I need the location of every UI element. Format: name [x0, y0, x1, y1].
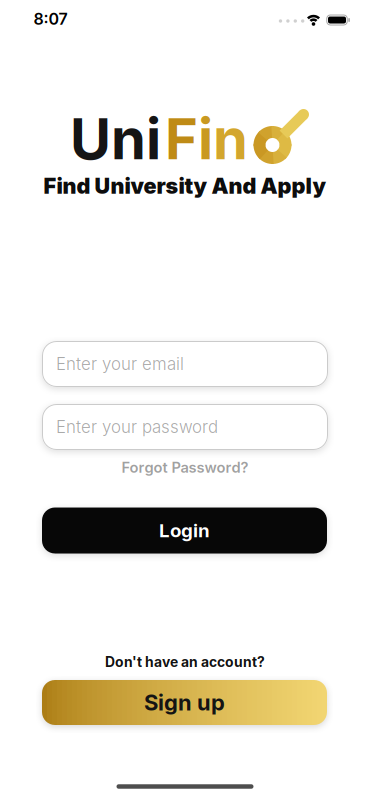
button[interactable]: Enter your password [42, 404, 328, 450]
staticText: Uni [70, 105, 161, 173]
staticText: F [165, 105, 198, 173]
staticText: i [198, 105, 213, 173]
staticText: Find University And Apply [43, 173, 326, 199]
button[interactable]: Forgot Password? [121, 459, 248, 476]
staticText: 8:07 [33, 9, 67, 29]
button[interactable]: Login [42, 507, 327, 553]
staticText: Login [159, 519, 210, 542]
button[interactable]: Sign up [42, 680, 327, 725]
staticText: Don't have an account? [105, 654, 265, 670]
staticText: Forgot Password? [121, 459, 248, 476]
staticText: Enter your password [56, 417, 218, 437]
button[interactable]: Enter your email [42, 341, 328, 387]
staticText: Sign up [144, 689, 225, 716]
staticText: Enter your email [56, 354, 184, 374]
staticText: n [213, 105, 248, 173]
